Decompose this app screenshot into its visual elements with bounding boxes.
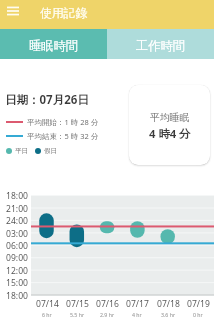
staticText: 07/18 xyxy=(157,298,180,310)
staticText: 平均結束：5 時 32 分 xyxy=(27,131,99,141)
staticText: 工作時間 xyxy=(136,38,185,53)
staticText: 18:00 xyxy=(6,290,28,302)
button[interactable]: 平均睡眠 xyxy=(129,85,210,165)
staticText: 平均睡眠 xyxy=(150,112,190,124)
staticText: 07/16 xyxy=(96,298,119,310)
staticText: 03:00 xyxy=(6,228,28,240)
staticText: 07/17 xyxy=(126,298,149,310)
staticText: 3.6 hr xyxy=(161,311,176,318)
button[interactable]: Menu xyxy=(7,4,19,18)
staticText: 18:00 xyxy=(6,190,28,202)
staticText: 4 時4 分 xyxy=(149,126,191,141)
button[interactable]: 工作時間 xyxy=(107,29,214,59)
staticText: 睡眠時間 xyxy=(29,38,78,53)
staticText: 07/15 xyxy=(66,298,89,310)
button[interactable]: 睡眠時間 xyxy=(0,29,107,59)
staticText: 21:00 xyxy=(6,203,28,215)
staticText: 假日 xyxy=(44,147,57,155)
staticText: 平均開始：1 時 28 分 xyxy=(27,117,99,127)
staticText: 07/14 xyxy=(36,298,59,310)
staticText: 09:00 xyxy=(6,252,28,264)
staticText: 07/19 xyxy=(187,298,210,310)
staticText: 4 hr xyxy=(132,311,142,318)
staticText: 6 hr xyxy=(42,311,52,318)
staticText: 0 hr xyxy=(193,311,203,318)
staticText: 06:00 xyxy=(6,240,28,252)
staticText: 2.9 hr xyxy=(100,311,115,318)
staticText: 平日 xyxy=(15,147,28,155)
staticText: 日期：07月26日 xyxy=(5,92,89,108)
staticText: 5.5 hr xyxy=(70,311,85,318)
staticText: 15:00 xyxy=(6,277,28,289)
staticText: 使用記錄 xyxy=(40,6,88,21)
staticText: 24:00 xyxy=(6,215,28,227)
staticText: 12:00 xyxy=(6,265,28,277)
